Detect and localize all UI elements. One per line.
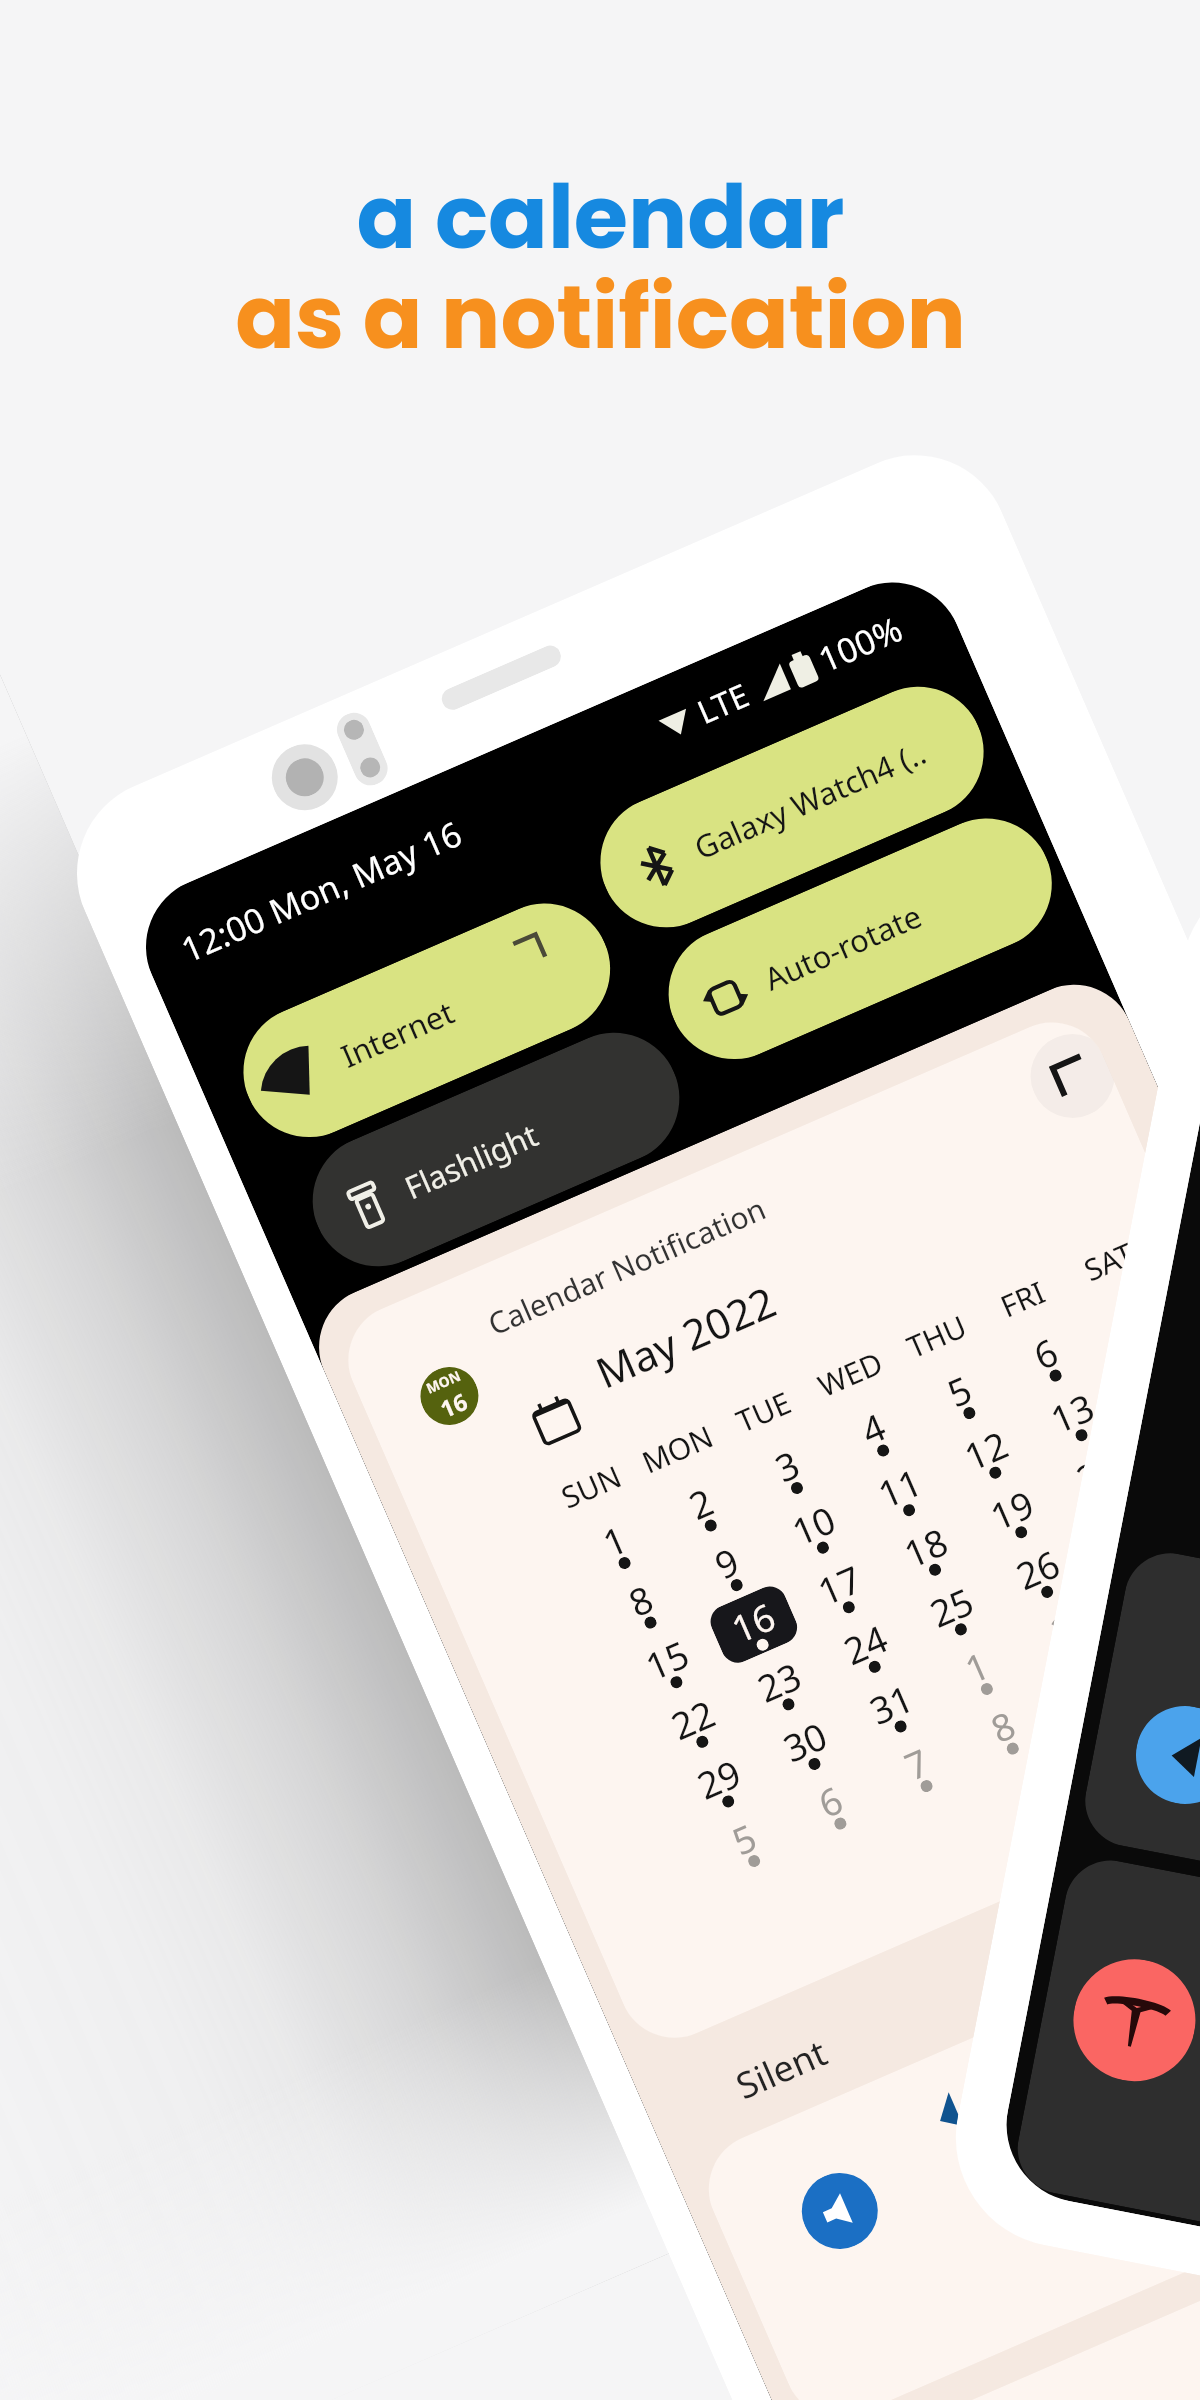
- staticText: 16: [435, 1385, 472, 1424]
- staticText: THU: [900, 1305, 973, 1367]
- staticText: 2: [681, 1475, 718, 1524]
- staticText: 22: [663, 1687, 720, 1745]
- staticText: 3: [767, 1438, 805, 1487]
- button[interactable]: Tesla: [823, 2138, 1200, 2400]
- staticText: 15: [637, 1628, 694, 1685]
- staticText: Flashlight: [398, 1113, 544, 1208]
- staticText: Internet: [334, 991, 460, 1077]
- staticText: 30: [775, 1709, 832, 1767]
- button[interactable]: Auto-rotate: [648, 798, 1072, 1080]
- staticText: 100%: [811, 605, 909, 682]
- staticText: MON: [423, 1366, 464, 1398]
- staticText: 18: [896, 1515, 953, 1573]
- staticText: 25: [922, 1575, 979, 1632]
- staticText: TUE: [730, 1381, 797, 1441]
- staticText: FRI: [994, 1271, 1051, 1326]
- staticText: 23: [749, 1650, 806, 1707]
- button[interactable]: Volume: [691, 1834, 1200, 2400]
- staticText: 31: [861, 1672, 918, 1729]
- button[interactable]: Flashlight: [292, 1012, 700, 1287]
- staticText: SAT: [1077, 1232, 1140, 1290]
- staticText: 27: [1094, 1500, 1151, 1557]
- staticText: LTE: [690, 673, 756, 734]
- staticText: 20: [1068, 1440, 1125, 1498]
- staticText: SUN: [555, 1455, 628, 1517]
- staticText: 5: [939, 1363, 977, 1412]
- staticText: 6: [1026, 1325, 1063, 1374]
- staticText: 19: [982, 1478, 1039, 1535]
- staticText: 4: [853, 1400, 891, 1449]
- staticText: 10: [784, 1493, 841, 1550]
- staticText: 11: [870, 1455, 927, 1513]
- staticText: Galaxy Watch4 (..: [688, 731, 933, 869]
- staticText: 13: [1042, 1381, 1099, 1438]
- staticText: Calendar Notification: [481, 1187, 772, 1344]
- staticText: 8: [983, 1698, 1020, 1747]
- staticText: 1: [957, 1639, 994, 1688]
- staticText: WED: [811, 1342, 889, 1406]
- staticText: 26: [1008, 1537, 1065, 1595]
- staticText: Silent: [728, 2028, 834, 2110]
- staticText: 24: [835, 1612, 892, 1670]
- staticText: 17: [810, 1553, 867, 1610]
- staticText: 16: [723, 1590, 780, 1648]
- staticText: 12:00 Mon, May 16: [174, 810, 469, 972]
- staticText: 6: [810, 1773, 848, 1822]
- staticText: 14: [1128, 1343, 1185, 1401]
- staticText: MON: [635, 1415, 720, 1482]
- button[interactable]: Media device: [1077, 1545, 1200, 1936]
- staticText: as a notification: [235, 256, 966, 379]
- staticText: 12: [956, 1418, 1013, 1475]
- staticText: May 2022: [587, 1272, 785, 1400]
- staticText: 9: [707, 1535, 744, 1584]
- staticText: 1: [594, 1513, 632, 1562]
- staticText: 29: [689, 1747, 746, 1804]
- staticText: 7: [896, 1736, 934, 1785]
- button[interactable]: Expand: [1017, 1023, 1122, 1131]
- staticText: Auto-rotate: [758, 894, 928, 999]
- staticText: 7: [1112, 1288, 1149, 1337]
- other: Volume: [790, 2161, 890, 2261]
- staticText: 9: [1069, 1661, 1107, 1710]
- staticText: 2: [1043, 1601, 1081, 1650]
- button[interactable]: Tesla device: [1010, 1853, 1200, 2284]
- button[interactable]: Internet: [223, 883, 631, 1158]
- staticText: 3: [1129, 1564, 1167, 1613]
- button[interactable]: Galaxy Watch4 (..: [580, 666, 1004, 948]
- staticText: a calendar: [356, 156, 845, 279]
- button[interactable]: MON: [331, 1005, 1200, 2055]
- staticText: 8: [620, 1572, 658, 1621]
- staticText: 5: [724, 1811, 762, 1860]
